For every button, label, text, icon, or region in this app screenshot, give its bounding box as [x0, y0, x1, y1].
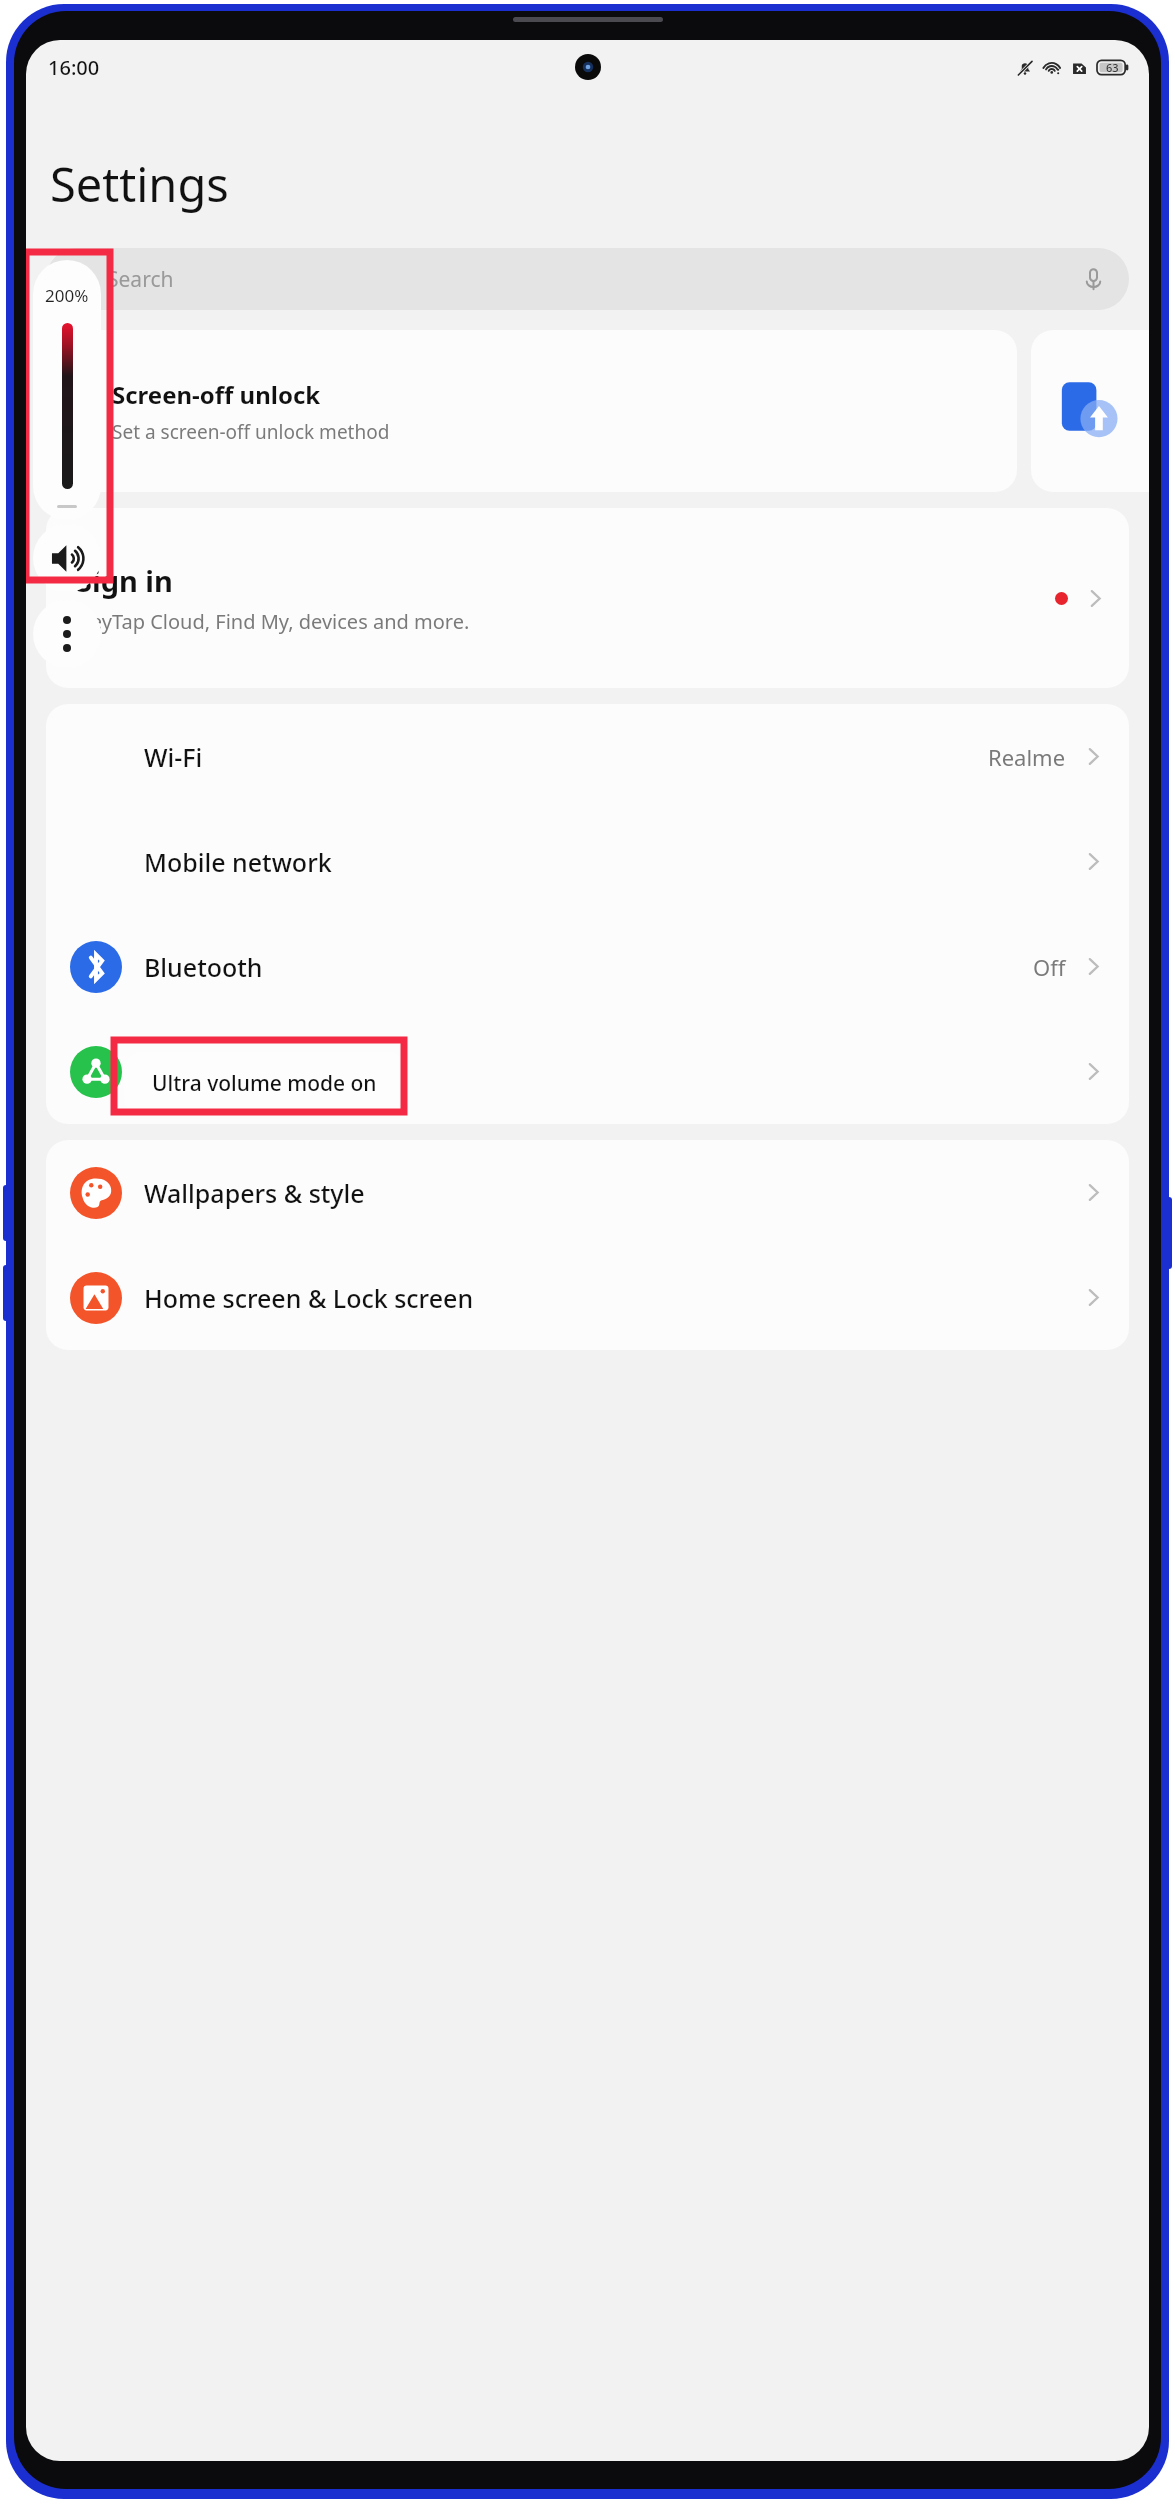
staticText: Set a screen-off unlock method: [112, 419, 390, 445]
button[interactable]: Voice search: [1080, 266, 1107, 293]
staticText: 63: [1106, 60, 1119, 75]
button[interactable]: System update: [1031, 330, 1149, 492]
staticText: Off: [1033, 952, 1066, 982]
button[interactable]: Sign in: [46, 508, 1129, 688]
button[interactable]: More volume options: [33, 600, 101, 668]
button[interactable]: Speaker volume: [33, 524, 101, 592]
staticText: Search: [107, 265, 174, 294]
staticText: HeyTap Cloud, Find My, devices and more.: [76, 608, 470, 635]
button[interactable]: Home screen & Lock screen: [46, 1245, 1129, 1350]
button[interactable]: Mobile network: [46, 809, 1129, 914]
staticText: Screen-off unlock: [112, 378, 321, 411]
button[interactable]: Volume slider 200 percent: [33, 260, 101, 520]
staticText: 200%: [45, 284, 89, 307]
staticText: Wallpapers & style: [144, 1176, 1082, 1210]
button[interactable]: Screen-off unlock: [46, 330, 1017, 492]
staticText: Realme: [988, 742, 1066, 772]
staticText: Mobile network: [144, 845, 1082, 879]
staticText: Ultra volume mode on: [152, 1069, 377, 1098]
staticText: Connection & sharing: [144, 1055, 1082, 1089]
button[interactable]: Connection & sharing: [46, 1019, 1129, 1124]
button[interactable]: Wallpapers & style: [46, 1140, 1129, 1245]
staticText: Bluetooth: [144, 950, 1033, 984]
staticText: Sign in: [76, 561, 173, 600]
staticText: Home screen & Lock screen: [144, 1281, 1082, 1315]
button[interactable]: Bluetooth: [46, 914, 1129, 1019]
button[interactable]: Wi-Fi: [46, 704, 1129, 809]
other: System update: [1058, 379, 1122, 443]
staticText: 16:00: [48, 54, 100, 81]
staticText: Wi-Fi: [144, 740, 988, 774]
button[interactable]: Search: [46, 248, 1129, 310]
staticText: Settings: [50, 152, 229, 216]
